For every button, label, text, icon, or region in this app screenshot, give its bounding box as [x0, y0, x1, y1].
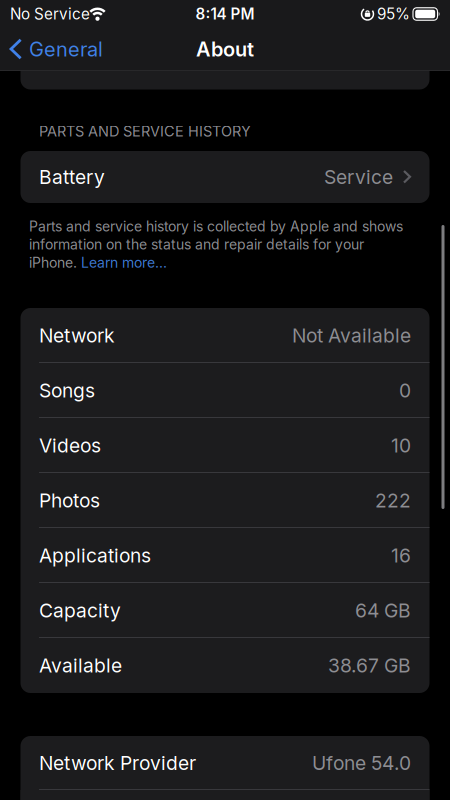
staticText: 8:14 PM	[195, 5, 254, 23]
staticText: No Service	[10, 5, 90, 23]
staticText: 16	[391, 544, 411, 567]
staticText: Capacity	[39, 599, 121, 622]
staticText: Not Available	[292, 324, 411, 347]
staticText: Ufone 54.0	[312, 751, 411, 775]
button[interactable]: General	[0, 28, 103, 70]
staticText: Parts and service history is collected b…	[29, 218, 403, 235]
staticText: Battery	[39, 165, 105, 189]
button[interactable]: Learn more...	[81, 254, 167, 271]
staticText: 0	[399, 379, 411, 402]
staticText: 222	[375, 489, 411, 512]
staticText: Service	[324, 165, 393, 189]
staticText: Network Provider	[39, 751, 196, 775]
staticText: Applications	[39, 544, 151, 567]
staticText: General	[29, 37, 103, 61]
staticText: information on the status and repair det…	[29, 236, 364, 253]
staticText: 64 GB	[355, 599, 411, 622]
staticText: Network	[39, 324, 115, 347]
staticText: PARTS AND SERVICE HISTORY	[39, 122, 251, 140]
staticText: 95%	[377, 5, 410, 23]
staticText: Photos	[39, 489, 100, 512]
staticText: About	[196, 37, 254, 61]
staticText: Learn more...	[81, 254, 167, 271]
staticText: Available	[39, 654, 122, 677]
button[interactable]: Battery	[20, 151, 429, 203]
staticText: 38.67 GB	[328, 654, 411, 677]
staticText: Songs	[39, 379, 95, 402]
staticText: 10	[391, 434, 411, 457]
staticText: iPhone.	[29, 254, 81, 271]
staticText: Videos	[39, 434, 101, 457]
